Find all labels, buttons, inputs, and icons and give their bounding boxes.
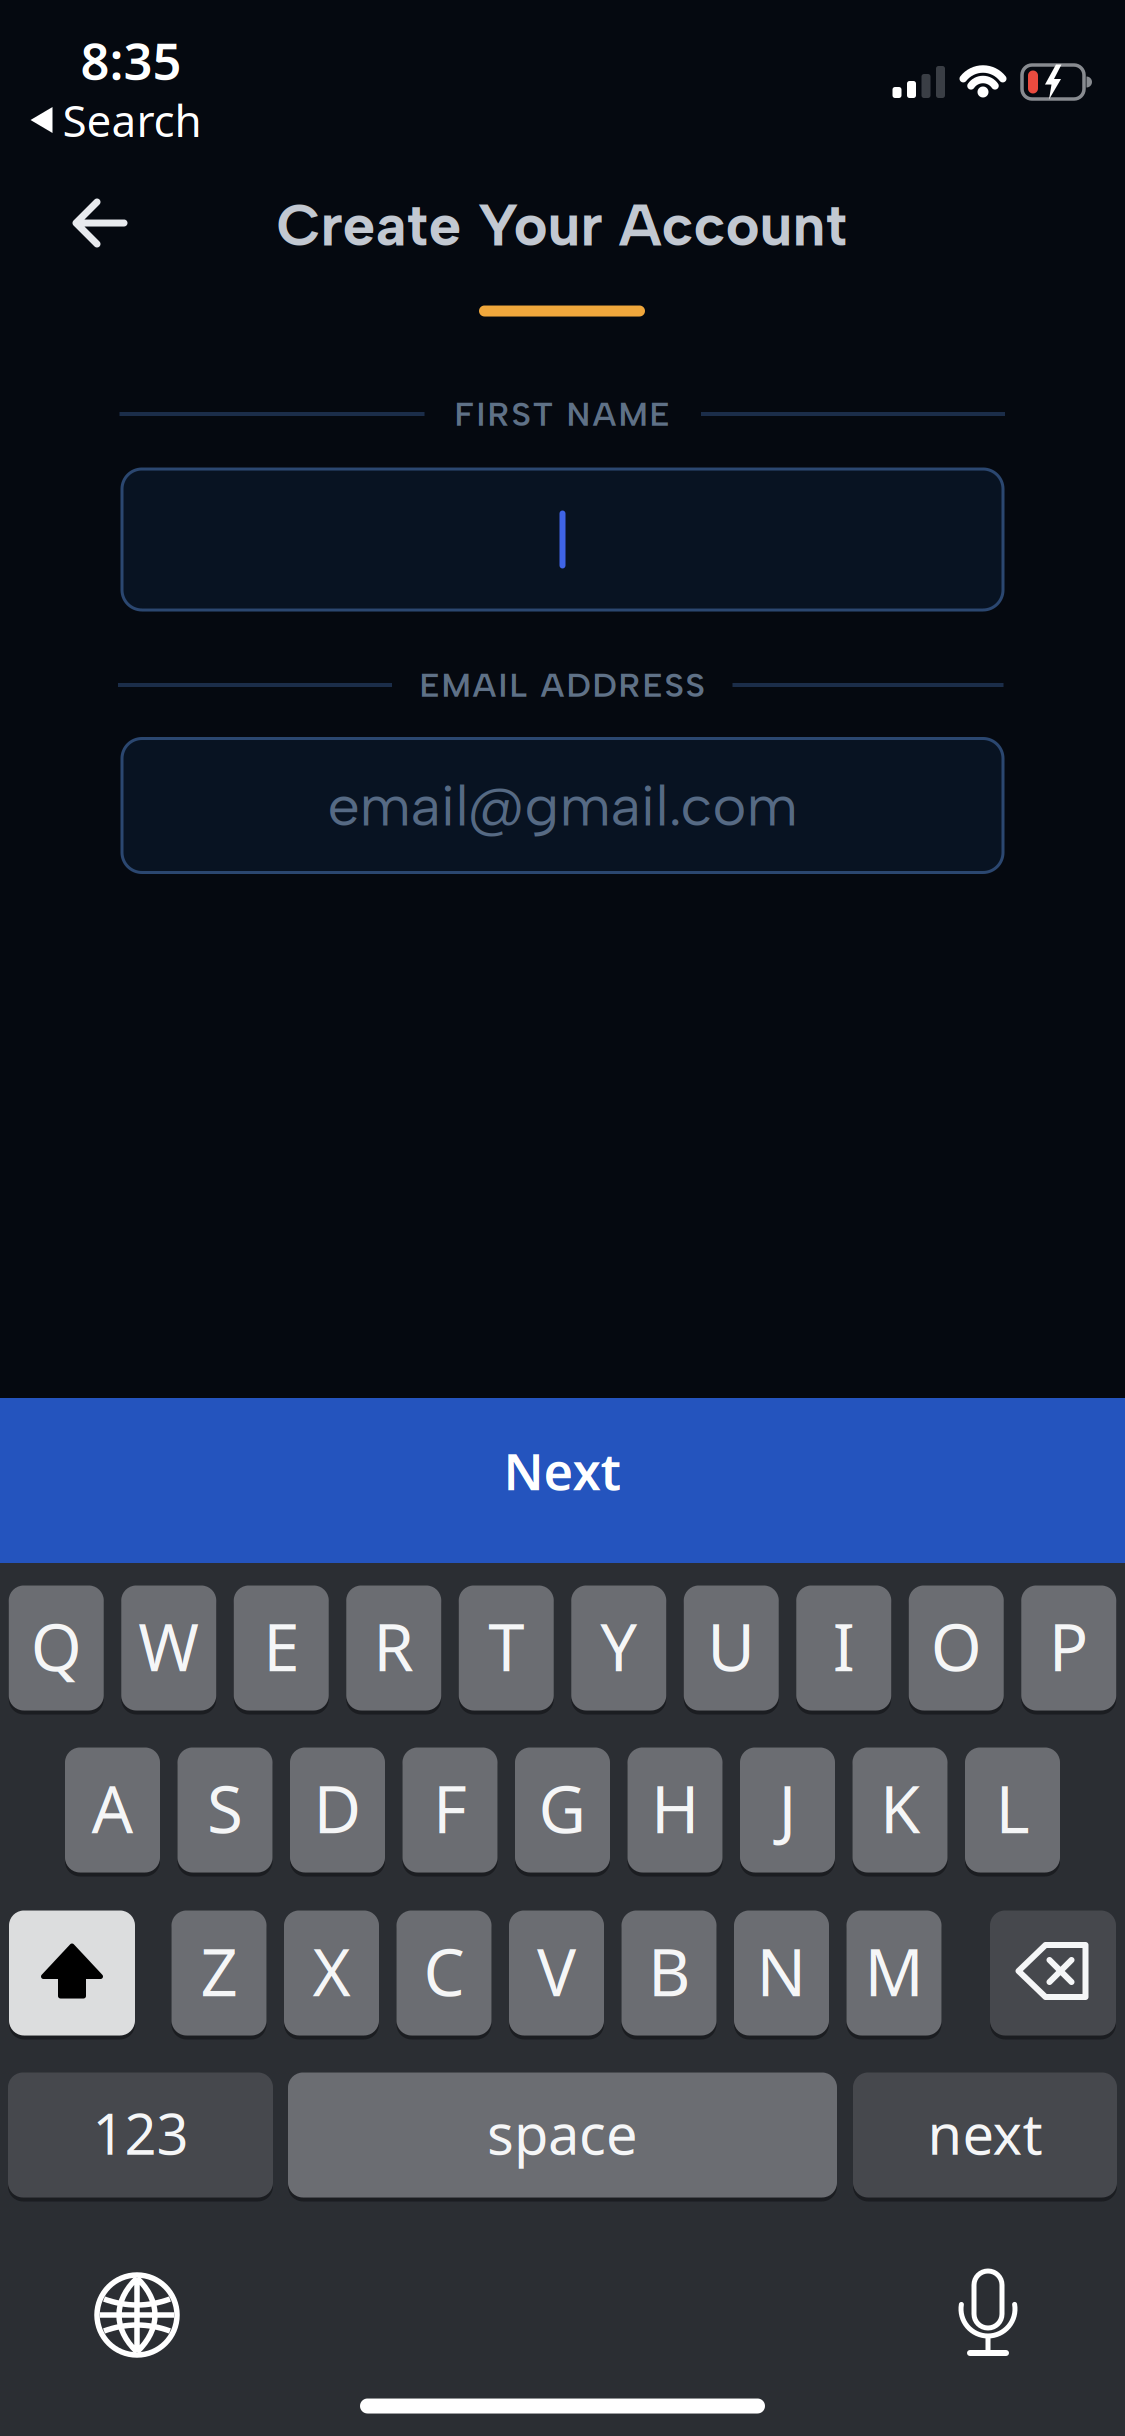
staticText: H <box>651 1765 699 1851</box>
button[interactable]: V <box>509 1908 604 2037</box>
staticText: X <box>312 1928 350 2014</box>
button[interactable]: H <box>627 1745 722 1874</box>
button[interactable]: U <box>684 1583 779 1712</box>
button[interactable]: Q <box>9 1583 104 1712</box>
staticText: J <box>778 1765 796 1851</box>
staticText: next <box>927 2096 1042 2170</box>
staticText: P <box>1049 1603 1089 1689</box>
staticText: Create Your Account <box>276 190 847 260</box>
staticText: G <box>538 1765 586 1851</box>
staticText: M <box>864 1928 923 2014</box>
button[interactable]: S <box>177 1745 272 1874</box>
staticText: Q <box>31 1603 82 1689</box>
staticText: D <box>313 1765 361 1851</box>
button[interactable]: Email Address <box>122 738 1003 872</box>
button[interactable]: D <box>290 1745 385 1874</box>
staticText: I <box>833 1603 855 1689</box>
staticText: S <box>207 1765 243 1851</box>
button[interactable]: K <box>852 1745 947 1874</box>
button[interactable]: F <box>402 1745 497 1874</box>
staticText: 8:35 <box>80 26 181 94</box>
button[interactable]: Back to Search <box>30 91 201 149</box>
staticText: Search <box>62 91 201 149</box>
staticText: C <box>423 1928 464 2014</box>
button[interactable]: Delete <box>990 1908 1116 2037</box>
staticText: space <box>487 2096 638 2170</box>
staticText: O <box>931 1603 982 1689</box>
button[interactable]: L <box>965 1745 1060 1874</box>
staticText: email@gmail.com <box>327 771 797 840</box>
button[interactable]: X <box>284 1908 379 2037</box>
staticText: L <box>995 1765 1029 1851</box>
button[interactable]: O <box>909 1583 1004 1712</box>
staticText: EMAIL ADDRESS <box>419 665 704 705</box>
button[interactable]: space <box>288 2070 837 2199</box>
staticText: N <box>756 1928 806 2014</box>
button[interactable]: I <box>796 1583 891 1712</box>
staticText: Next <box>503 1437 621 1504</box>
button[interactable]: next <box>853 2070 1117 2199</box>
staticText: R <box>373 1603 414 1689</box>
button[interactable]: W <box>121 1583 216 1712</box>
staticText: FIRST NAME <box>454 394 669 434</box>
button[interactable]: G <box>515 1745 610 1874</box>
button[interactable]: Next keyboard <box>97 2275 177 2355</box>
staticText: K <box>880 1765 920 1851</box>
staticText: 123 <box>92 2096 188 2170</box>
button[interactable]: C <box>396 1908 491 2037</box>
staticText: W <box>138 1603 199 1689</box>
staticText: F <box>433 1765 467 1851</box>
button[interactable]: M <box>846 1908 941 2037</box>
staticText: U <box>707 1603 755 1689</box>
staticText: T <box>488 1603 524 1689</box>
button[interactable]: Dictate <box>946 2262 1030 2362</box>
button[interactable]: N <box>734 1908 829 2037</box>
button[interactable]: Y <box>571 1583 666 1712</box>
button[interactable]: E <box>234 1583 329 1712</box>
staticText: Z <box>200 1928 237 2014</box>
staticText: V <box>537 1928 576 2014</box>
staticText: Y <box>600 1603 637 1689</box>
button[interactable]: R <box>346 1583 441 1712</box>
button[interactable]: J <box>740 1745 835 1874</box>
button[interactable]: Z <box>171 1908 266 2037</box>
button[interactable]: B <box>621 1908 716 2037</box>
staticText: E <box>263 1603 299 1689</box>
button[interactable]: Next <box>0 1398 1125 1563</box>
button[interactable]: 123 <box>8 2070 273 2199</box>
button[interactable]: First Name <box>122 469 1003 610</box>
staticText: A <box>91 1765 133 1851</box>
button[interactable]: A <box>65 1745 160 1874</box>
button[interactable]: Shift <box>9 1908 135 2037</box>
button[interactable]: T <box>459 1583 554 1712</box>
button[interactable]: Back <box>74 200 126 246</box>
button[interactable]: P <box>1021 1583 1116 1712</box>
staticText: B <box>648 1928 690 2014</box>
